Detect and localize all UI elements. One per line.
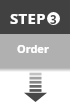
staticText: 3 — [50, 12, 57, 25]
button[interactable]: STEP — [0, 0, 70, 34]
staticText: Order — [17, 41, 49, 56]
staticText: STEP — [10, 8, 46, 28]
other: Download order — [0, 0, 70, 104]
